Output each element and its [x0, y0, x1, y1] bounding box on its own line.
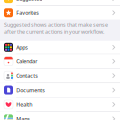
staticText: Documents [16, 86, 45, 94]
staticText: Suggested [16, 0, 42, 2]
button[interactable]: Apps [0, 41, 120, 54]
button[interactable]: Maps [0, 112, 120, 120]
staticText: Maps [16, 115, 30, 120]
staticText: Contacts [16, 72, 38, 79]
button[interactable]: Documents [0, 83, 120, 97]
button[interactable]: Contacts [0, 69, 120, 83]
staticText: Suggested shows actions that make sense … [4, 21, 108, 35]
staticText: Apps [16, 44, 28, 51]
button[interactable]: Favorites [0, 6, 120, 19]
staticText: Favorites [16, 9, 39, 16]
staticText: Health [16, 101, 32, 108]
button[interactable]: Health [0, 97, 120, 111]
button[interactable]: Calendar [0, 54, 120, 68]
button[interactable]: Suggested [0, 0, 120, 6]
staticText: Calendar [16, 58, 37, 65]
